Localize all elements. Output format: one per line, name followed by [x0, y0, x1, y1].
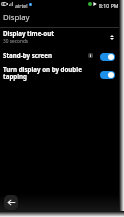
button[interactable]: Display time-out — [0, 28, 119, 46]
button[interactable]: Turn display on by double tapping — [0, 63, 119, 83]
button[interactable]: More information — [88, 53, 93, 58]
staticText: airtel — [15, 2, 28, 9]
staticText: Display — [3, 12, 30, 23]
staticText: Display time-out — [3, 29, 54, 37]
staticText: 8:10 PM — [99, 2, 119, 9]
button[interactable]: Back — [4, 195, 18, 210]
staticText: Stand-by screen — [3, 51, 52, 59]
button[interactable]: Stand-by screen — [0, 47, 119, 63]
button[interactable]: Toggle on — [100, 71, 115, 79]
staticText: 30 seconds — [3, 38, 29, 45]
staticText: Turn display on by double tapping — [3, 65, 86, 81]
button[interactable]: Toggle on — [100, 53, 115, 61]
